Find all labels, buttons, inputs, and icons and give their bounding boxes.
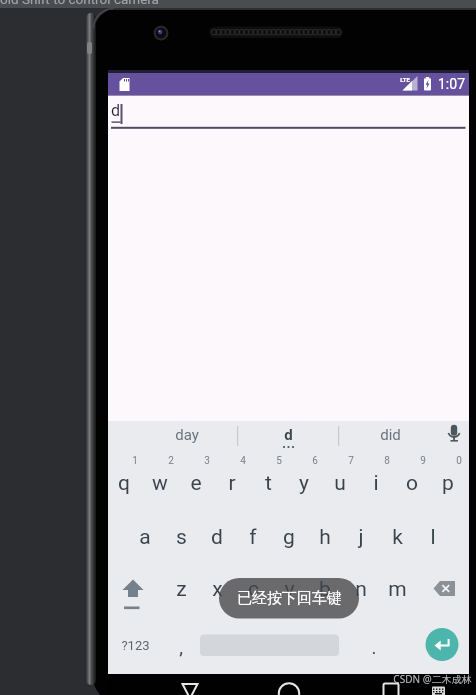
button[interactable]: g	[271, 510, 307, 564]
staticText: 6	[312, 455, 318, 467]
staticText: CSDN @二木成林	[393, 672, 472, 684]
staticText: w	[152, 471, 168, 496]
staticText: m	[388, 577, 407, 602]
staticText: p	[442, 471, 454, 496]
staticText: u	[334, 471, 346, 496]
button[interactable]: d	[199, 510, 235, 564]
staticText: s	[176, 525, 187, 550]
button[interactable]: v	[271, 562, 307, 616]
staticText: k	[392, 525, 403, 550]
button[interactable]: y	[286, 456, 322, 510]
staticText: d	[111, 101, 121, 120]
staticText: b	[319, 577, 331, 602]
staticText: 3	[204, 455, 210, 467]
staticText: j	[358, 525, 364, 550]
staticText: did	[380, 426, 401, 444]
staticText: x	[212, 577, 223, 602]
staticText: 0	[456, 455, 462, 467]
staticText: ,	[179, 636, 183, 658]
button[interactable]: n	[343, 562, 379, 616]
button[interactable]: d	[108, 96, 466, 128]
button[interactable]: f	[235, 510, 271, 564]
staticText: a	[139, 525, 151, 550]
button[interactable]: w	[142, 456, 178, 510]
staticText: 1:07	[438, 76, 465, 92]
staticText: d	[211, 525, 223, 550]
button[interactable]: ,	[172, 634, 190, 660]
staticText: LTE	[400, 76, 410, 83]
staticText: day	[175, 426, 199, 444]
staticText: q	[118, 471, 130, 496]
button[interactable]	[425, 628, 459, 662]
button[interactable]: d	[248, 423, 328, 447]
staticText: 1	[132, 455, 138, 467]
button[interactable]	[440, 420, 468, 446]
button[interactable]	[113, 562, 153, 616]
button[interactable]: did	[350, 423, 430, 447]
button[interactable]: q	[106, 456, 142, 510]
staticText: g	[283, 525, 295, 550]
staticText: 已经按下回车键	[237, 589, 342, 608]
button[interactable]: e	[178, 456, 214, 510]
button[interactable]: i	[358, 456, 394, 510]
button[interactable]: b	[307, 562, 343, 616]
staticText: ?123	[121, 638, 150, 653]
staticText: i	[373, 471, 379, 496]
staticText: 7	[348, 455, 354, 467]
staticText: 4	[240, 455, 246, 467]
staticText: 8	[384, 455, 390, 467]
button[interactable]: day	[147, 423, 227, 447]
staticText: h	[319, 525, 331, 550]
staticText: y	[299, 471, 309, 496]
staticText: f	[249, 525, 257, 550]
staticText: r	[228, 471, 236, 496]
button[interactable]: p	[430, 456, 466, 510]
button[interactable]: a	[127, 510, 163, 564]
button[interactable]: z	[163, 562, 199, 616]
button[interactable]: s	[163, 510, 199, 564]
staticText: o	[406, 471, 418, 496]
button[interactable]: .	[365, 634, 383, 660]
staticText: e	[190, 471, 202, 496]
button[interactable]: x	[199, 562, 235, 616]
staticText: t	[265, 471, 272, 496]
staticText: c	[248, 577, 259, 602]
button[interactable]: m	[379, 562, 415, 616]
button[interactable]: ?123	[115, 632, 155, 658]
staticText: 2	[168, 455, 174, 467]
staticText: .	[371, 636, 377, 658]
staticText: n	[355, 577, 367, 602]
staticText: z	[176, 577, 187, 602]
button[interactable]: j	[343, 510, 379, 564]
staticText: 5	[276, 455, 282, 467]
staticText: v	[284, 577, 295, 602]
button[interactable]: h	[307, 510, 343, 564]
button[interactable]: t	[250, 456, 286, 510]
button[interactable]: c	[235, 562, 271, 616]
staticText: 9	[420, 455, 426, 467]
button[interactable]: r	[214, 456, 250, 510]
staticText: l	[430, 525, 436, 550]
button[interactable]: u	[322, 456, 358, 510]
button[interactable]: o	[394, 456, 430, 510]
button[interactable]: k	[379, 510, 415, 564]
staticText: d	[284, 426, 293, 444]
button[interactable]	[425, 562, 465, 616]
button[interactable]: l	[415, 510, 451, 564]
staticText: old Shift to control camera	[0, 0, 159, 7]
